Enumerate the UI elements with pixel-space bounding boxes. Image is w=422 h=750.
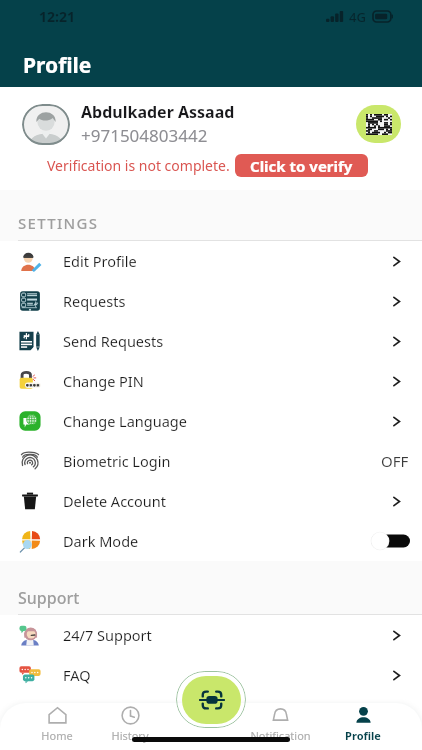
staticText: FAQ [63, 665, 91, 685]
button[interactable]: Dark Mode [0, 521, 422, 561]
button[interactable]: Profile [327, 705, 399, 743]
button[interactable]: Notification [244, 705, 316, 743]
staticText: Biometric Login [63, 451, 171, 471]
button[interactable]: Delete Account [0, 481, 422, 521]
staticText: SETTINGS [18, 213, 99, 233]
staticText: OFF [381, 451, 409, 471]
staticText: +971504803442 [81, 124, 208, 147]
button[interactable]: FAQ [0, 655, 422, 695]
button[interactable]: Scan [182, 676, 241, 724]
staticText: Dark Mode [63, 531, 139, 551]
staticText: Send Requests [63, 331, 164, 351]
staticText: Delete Account [63, 491, 166, 511]
staticText: Support [18, 587, 80, 609]
staticText: History [111, 728, 149, 743]
staticText: 4G [349, 8, 366, 26]
staticText: Requests [63, 291, 126, 311]
staticText: Edit Profile [63, 251, 137, 271]
button[interactable] [0, 695, 422, 735]
button[interactable]: Change Language [0, 401, 422, 441]
button[interactable]: 24/7 Support [0, 615, 422, 655]
button[interactable]: Click to verify [235, 154, 368, 177]
staticText: Home [41, 728, 73, 743]
button[interactable]: Biometric Login [0, 441, 422, 481]
staticText: Click to verify [250, 156, 353, 176]
staticText: Change Language [63, 411, 187, 431]
button[interactable]: Send Requests [0, 321, 422, 361]
staticText: Verification is not complete. [47, 156, 230, 175]
staticText: 24/7 Support [63, 625, 152, 645]
button[interactable]: History [94, 705, 166, 743]
button[interactable]: Dark mode toggle [371, 532, 410, 550]
button[interactable]: Home [21, 705, 93, 743]
button[interactable]: Change PIN [0, 361, 422, 401]
button[interactable]: Show QR code [356, 105, 401, 143]
staticText: Profile [345, 728, 381, 743]
staticText: Change PIN [63, 371, 144, 391]
staticText: 12:21 [39, 7, 75, 26]
staticText: Notification [250, 728, 311, 743]
staticText: Profile [23, 51, 92, 80]
staticText: Abdulkader Assaad [81, 101, 235, 123]
button[interactable]: Requests [0, 281, 422, 321]
button[interactable]: Edit Profile [0, 241, 422, 281]
